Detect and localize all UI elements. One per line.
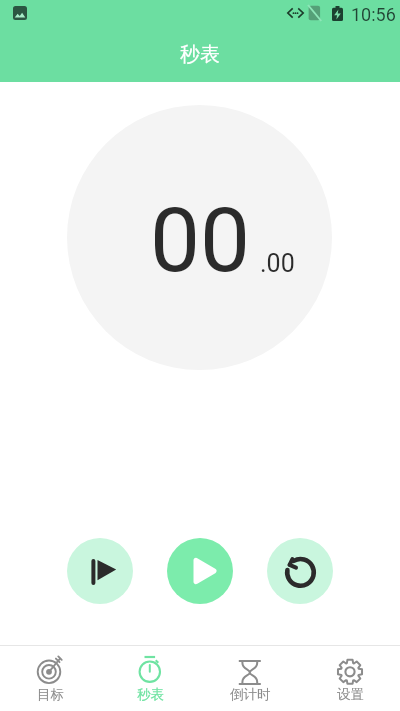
button[interactable]: 秒表	[100, 646, 200, 711]
staticText: 设置	[337, 686, 364, 703]
staticText: 目标	[37, 686, 64, 703]
staticText: 00	[150, 188, 251, 292]
button[interactable]	[67, 538, 133, 604]
staticText: 10:56	[351, 4, 396, 25]
button[interactable]	[167, 538, 233, 604]
staticText: 秒表	[180, 42, 220, 67]
staticText: 倒计时	[230, 686, 271, 703]
staticText: .00	[260, 249, 295, 278]
button[interactable]: 倒计时	[200, 646, 300, 711]
button[interactable]	[267, 538, 333, 604]
button[interactable]: 设置	[300, 646, 400, 711]
button[interactable]: 目标	[0, 646, 100, 711]
staticText: 秒表	[137, 686, 164, 703]
